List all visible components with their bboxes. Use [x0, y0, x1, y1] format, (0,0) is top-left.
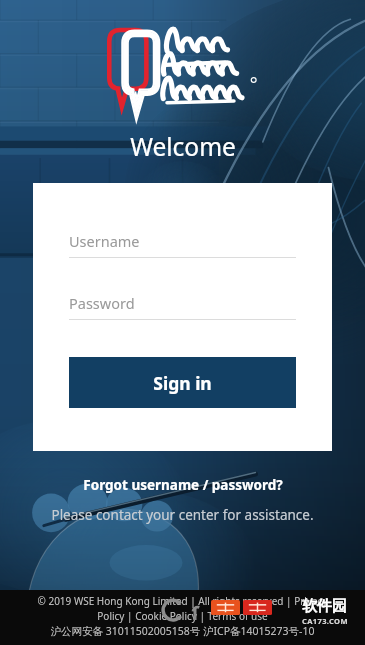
staticText: Password [69, 293, 135, 313]
button[interactable]: Forgot username / password? [0, 476, 365, 494]
button[interactable]: Password [69, 287, 296, 320]
staticText: 软件园 [302, 597, 347, 616]
staticText: © 2019 WSE Hong Kong Limited | All right… [10, 594, 355, 623]
staticText: Forgot username / password? [83, 476, 283, 494]
button[interactable]: Sign in [69, 357, 296, 408]
staticText: Please contact your center for assistanc… [51, 506, 314, 524]
staticText: Sign in [153, 371, 212, 395]
staticText: 沪公网安备 31011502005158号 沪ICP备14015273号-10 [10, 624, 355, 638]
button[interactable]: Username [69, 225, 296, 258]
staticText: CA173.COM [302, 616, 348, 626]
staticText: Username [69, 231, 140, 251]
staticText: Welcome [130, 130, 236, 163]
